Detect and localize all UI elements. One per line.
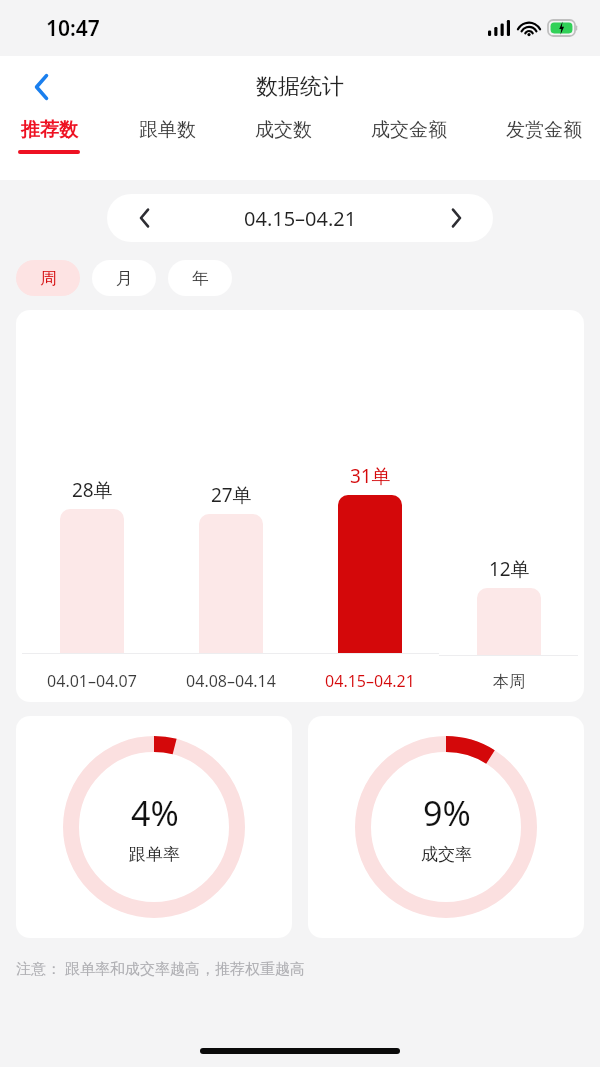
button[interactable]: Previous week [129, 203, 159, 233]
staticText: 成交率 [421, 844, 472, 865]
staticText: 数据统计 [256, 73, 344, 101]
staticText: 发赏金额 [506, 118, 582, 142]
staticText: 年 [192, 268, 209, 289]
button[interactable]: 推荐数 [18, 118, 80, 154]
staticText: 跟单率 [129, 844, 180, 865]
button[interactable]: 年 [168, 260, 232, 296]
button[interactable]: Back [20, 65, 64, 109]
staticText: 推荐数 [21, 118, 78, 142]
staticText: 9% [423, 790, 471, 836]
staticText: 04.08–04.14 [186, 670, 276, 692]
staticText: 周 [40, 268, 57, 289]
staticText: 月 [116, 268, 133, 289]
staticText: 31单 [350, 463, 391, 489]
button[interactable]: 成交金额 [371, 118, 447, 154]
staticText: 跟单数 [139, 118, 196, 142]
button[interactable]: 9% [308, 716, 584, 938]
staticText: 04.15–04.21 [325, 670, 415, 692]
button[interactable]: 4% [16, 716, 292, 938]
staticText: 27单 [211, 482, 252, 508]
button[interactable]: Next week [441, 203, 471, 233]
button[interactable]: 月 [92, 260, 156, 296]
staticText: 10:47 [46, 14, 100, 43]
staticText: 成交金额 [371, 118, 447, 142]
staticText: 04.15–04.21 [244, 205, 357, 232]
button[interactable]: 跟单数 [139, 118, 196, 154]
staticText: 28单 [72, 477, 113, 503]
staticText: 注意： 跟单率和成交率越高，推荐权重越高 [16, 958, 305, 978]
button[interactable]: Previous week [107, 194, 493, 242]
staticText: 12单 [489, 556, 530, 582]
staticText: 04.01–04.07 [47, 670, 137, 692]
button[interactable]: 成交数 [255, 118, 312, 154]
staticText: 本周 [493, 672, 525, 692]
staticText: 成交数 [255, 118, 312, 142]
button[interactable]: 周 [16, 260, 80, 296]
staticText: 4% [131, 790, 179, 836]
button[interactable]: 发赏金额 [506, 118, 582, 154]
